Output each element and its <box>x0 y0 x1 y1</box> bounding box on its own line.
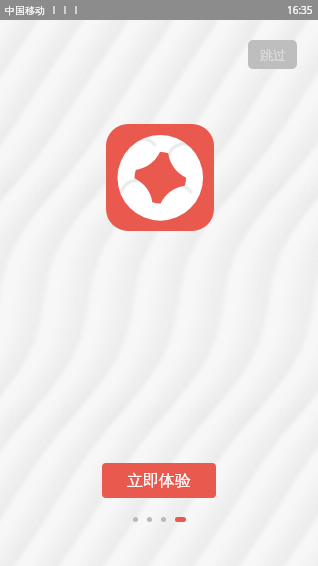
button[interactable]: 立即体验 <box>102 463 216 498</box>
staticText: 跳过 <box>260 47 286 63</box>
staticText: 中国移动 <box>5 4 45 17</box>
button[interactable]: 跳过 <box>248 40 297 69</box>
staticText: 立即体验 <box>127 471 191 491</box>
staticText: 16:35 <box>287 3 313 17</box>
